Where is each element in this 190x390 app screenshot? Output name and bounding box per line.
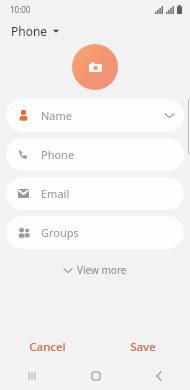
staticText: Email — [41, 186, 174, 201]
staticText: Cancel — [29, 339, 66, 355]
button[interactable]: Cancel — [0, 332, 95, 362]
button[interactable]: Save — [95, 332, 190, 362]
button[interactable]: Name — [6, 99, 184, 132]
button[interactable]: Add photo — [72, 44, 118, 90]
staticText: 10:00 — [10, 4, 31, 15]
staticText: View more — [77, 263, 127, 277]
staticText: Save — [130, 339, 156, 355]
button[interactable]: Groups — [6, 216, 184, 249]
staticText: Phone — [41, 147, 174, 162]
button[interactable]: View more — [56, 259, 135, 281]
button[interactable]: Home — [64, 362, 127, 390]
staticText: Phone — [11, 23, 48, 39]
button[interactable]: Recent apps — [0, 362, 64, 390]
button[interactable]: Phone — [0, 18, 190, 44]
staticText: Groups — [41, 225, 174, 240]
button[interactable]: Back — [127, 362, 190, 390]
staticText: Name — [41, 108, 165, 123]
button[interactable]: Email — [6, 177, 184, 210]
button[interactable]: Phone — [6, 138, 184, 171]
